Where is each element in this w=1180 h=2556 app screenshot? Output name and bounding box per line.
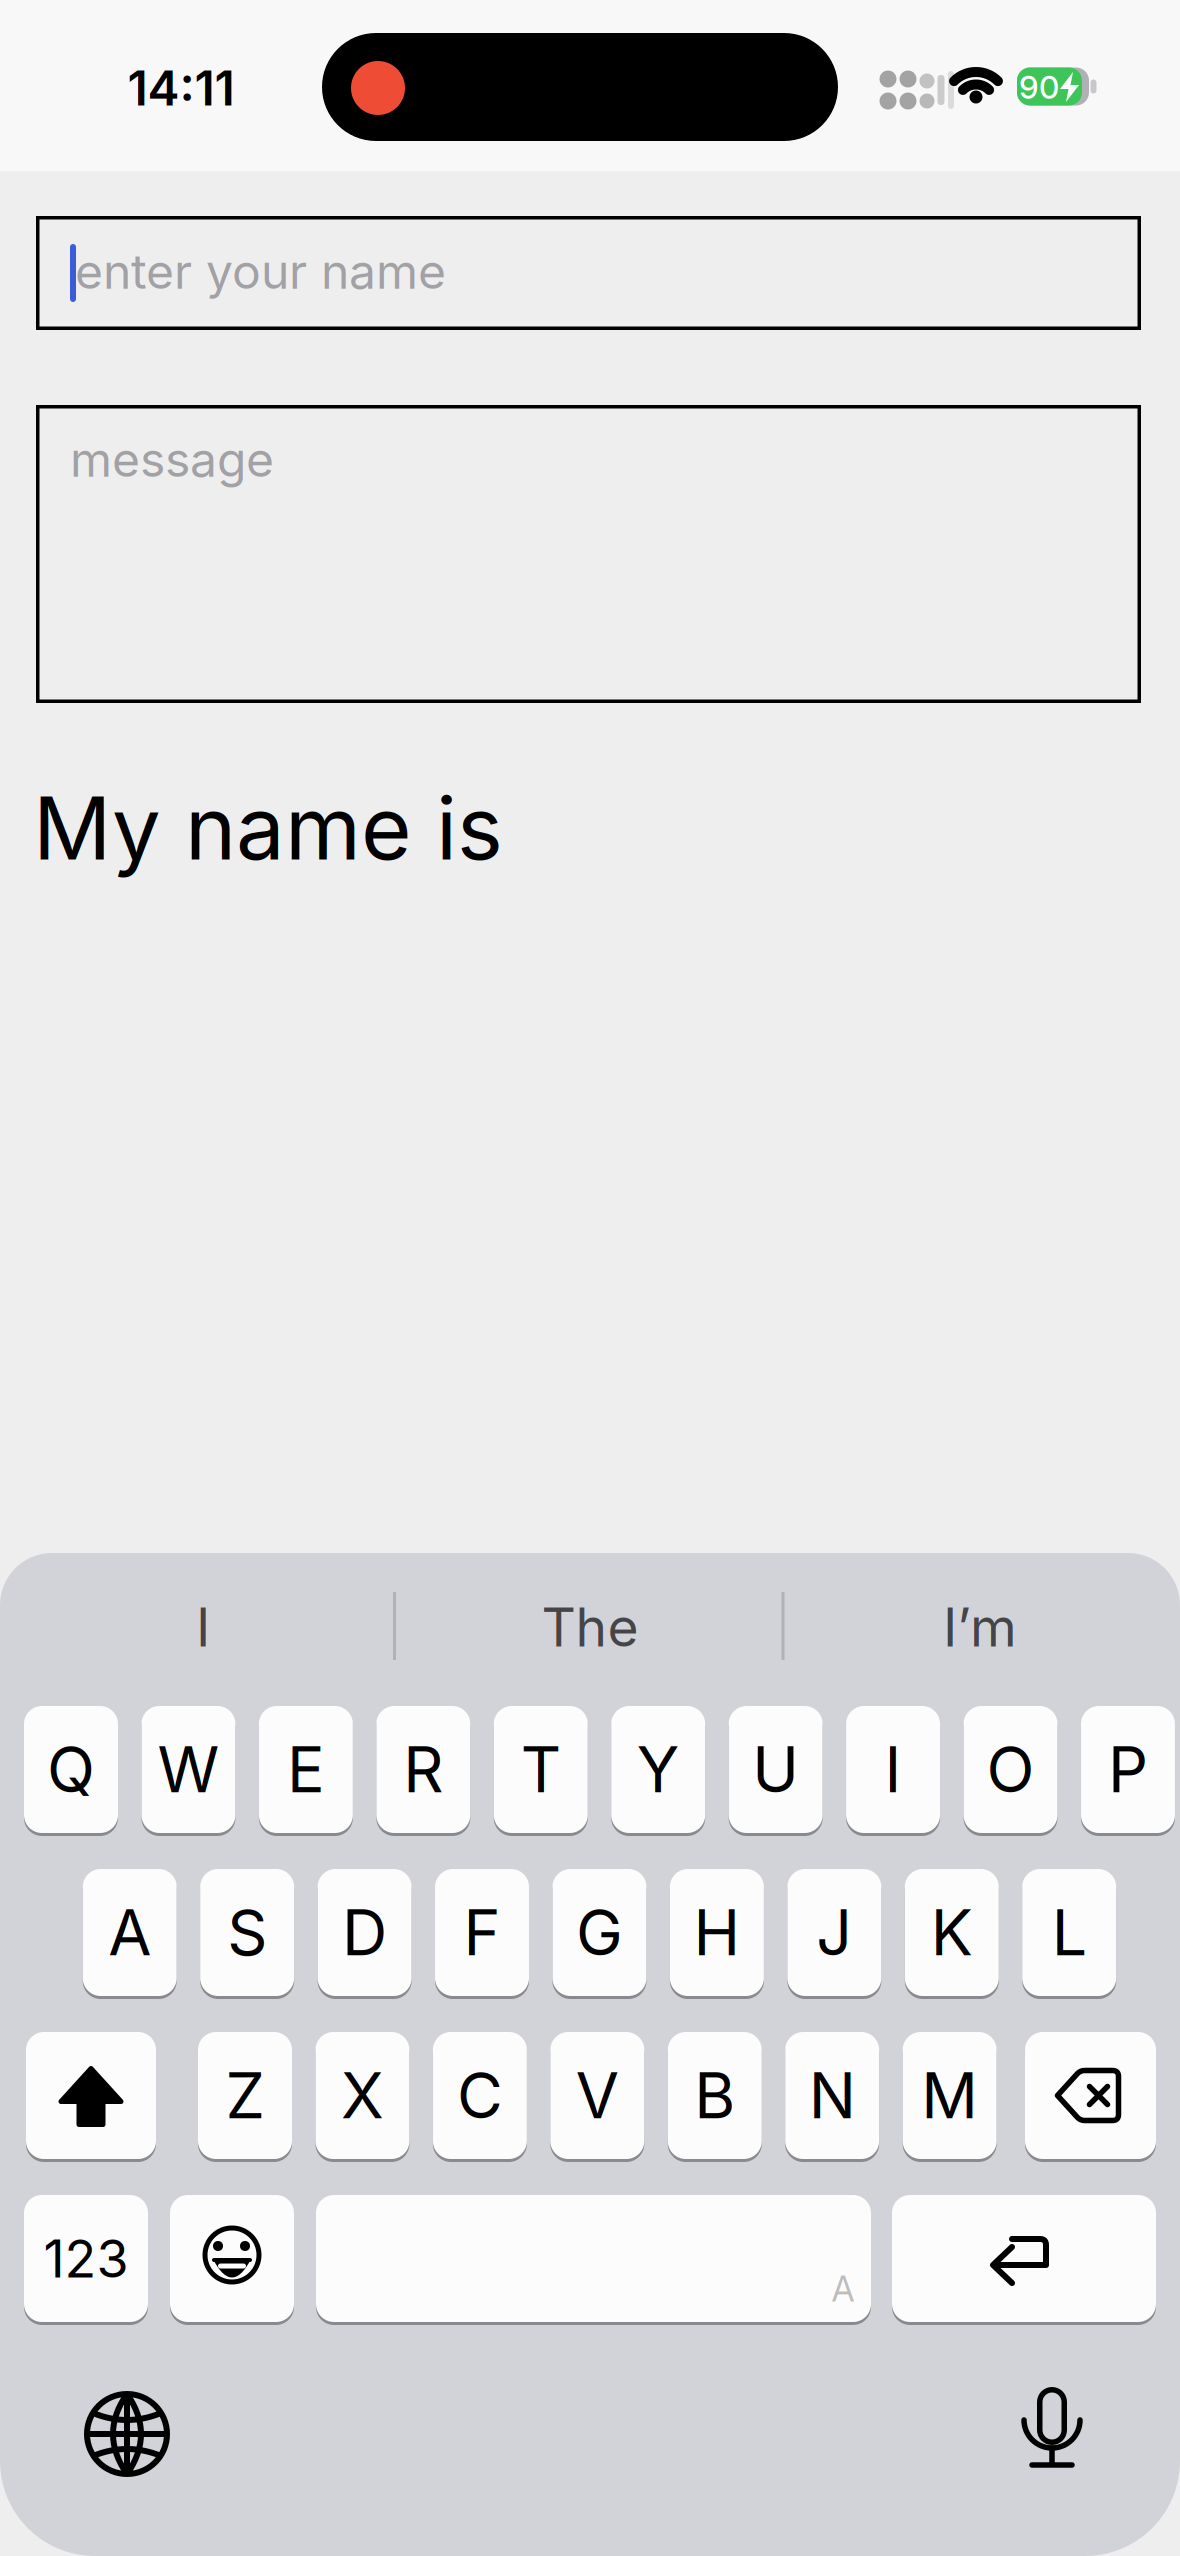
button[interactable]: M	[903, 2032, 997, 2159]
button[interactable]: T	[494, 1706, 588, 1833]
button[interactable]: L	[1022, 1869, 1116, 1996]
staticText: A	[831, 2269, 854, 2309]
staticText: I	[196, 1595, 210, 1658]
staticText: 123	[43, 2228, 128, 2289]
staticText: The	[541, 1595, 638, 1658]
button[interactable]: Emoji	[170, 2195, 294, 2322]
button[interactable]: I’m	[790, 1582, 1170, 1672]
button[interactable]: R	[376, 1706, 470, 1833]
button[interactable]: message	[36, 405, 1141, 703]
button[interactable]: E	[259, 1706, 353, 1833]
staticText: O	[986, 1732, 1034, 1806]
staticText: C	[457, 2058, 503, 2132]
staticText: T	[521, 1732, 561, 1806]
staticText: Z	[225, 2058, 264, 2132]
button[interactable]: F	[435, 1869, 529, 1996]
button[interactable]: Dictation	[987, 2367, 1117, 2497]
staticText: Q	[47, 1732, 95, 1806]
staticText: D	[342, 1895, 387, 1969]
staticText: S	[227, 1895, 267, 1969]
button[interactable]: O	[963, 1706, 1057, 1833]
staticText: E	[287, 1732, 325, 1806]
staticText: X	[341, 2058, 384, 2132]
button[interactable]: I	[846, 1706, 940, 1833]
staticText: B	[694, 2058, 735, 2132]
button[interactable]: N	[785, 2032, 879, 2159]
button[interactable]: B	[668, 2032, 762, 2159]
staticText: message	[70, 431, 274, 488]
staticText: G	[576, 1895, 623, 1969]
staticText: J	[816, 1895, 852, 1969]
button[interactable]: Return	[892, 2195, 1156, 2322]
button[interactable]: Numbers	[24, 2195, 148, 2322]
button[interactable]: C	[433, 2032, 527, 2159]
staticText: I’m	[943, 1595, 1017, 1658]
button[interactable]: U	[729, 1706, 823, 1833]
button[interactable]: Y	[611, 1706, 705, 1833]
staticText: H	[693, 1895, 740, 1969]
button[interactable]: G	[552, 1869, 646, 1996]
button[interactable]: V	[550, 2032, 644, 2159]
button[interactable]: Z	[198, 2032, 292, 2159]
button[interactable]: X	[315, 2032, 409, 2159]
staticText: enter your name	[75, 243, 446, 300]
staticText: K	[931, 1895, 973, 1969]
button[interactable]: P	[1081, 1706, 1175, 1833]
button[interactable]: J	[787, 1869, 881, 1996]
staticText: W	[157, 1732, 219, 1806]
button[interactable]: Q	[24, 1706, 118, 1833]
button[interactable]: K	[905, 1869, 999, 1996]
staticText: I	[885, 1732, 902, 1806]
staticText: V	[576, 2058, 619, 2132]
button[interactable]: W	[141, 1706, 235, 1833]
staticText: N	[809, 2058, 856, 2132]
staticText: M	[921, 2058, 978, 2132]
button[interactable]: D	[318, 1869, 412, 1996]
button[interactable]: Delete	[1025, 2032, 1156, 2159]
staticText: My name is	[33, 777, 503, 879]
button[interactable]: The	[400, 1582, 780, 1672]
button[interactable]: I	[13, 1582, 393, 1672]
staticText: A	[108, 1895, 151, 1969]
staticText: P	[1108, 1732, 1148, 1806]
staticText: L	[1052, 1895, 1087, 1969]
staticText: 14:11	[127, 60, 234, 116]
button[interactable]: Next keyboard	[62, 2369, 192, 2499]
staticText: 90	[1019, 68, 1059, 106]
button[interactable]: H	[670, 1869, 764, 1996]
button[interactable]: Shift	[26, 2032, 156, 2159]
button[interactable]: S	[200, 1869, 294, 1996]
staticText: F	[463, 1895, 500, 1969]
staticText: Y	[637, 1732, 680, 1806]
button[interactable]: enter your name	[36, 216, 1141, 330]
staticText: U	[752, 1732, 799, 1806]
button[interactable]: space	[316, 2195, 871, 2322]
button[interactable]: A	[83, 1869, 177, 1996]
staticText: R	[403, 1732, 443, 1806]
